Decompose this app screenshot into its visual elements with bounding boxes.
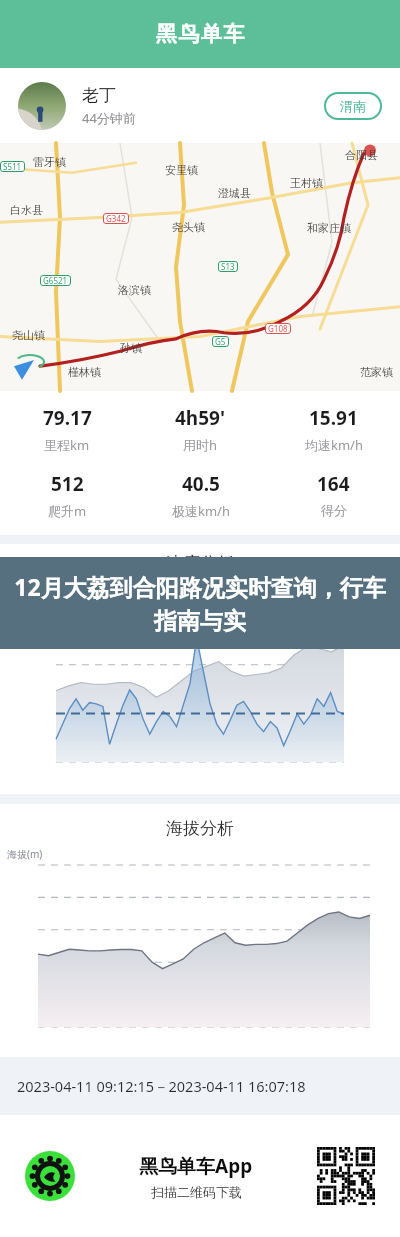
staticText: 速度分析 — [166, 553, 234, 574]
staticText: 79.17 — [43, 405, 92, 431]
staticText: 里程km — [44, 436, 90, 454]
staticText: 海拔分析 — [166, 818, 234, 839]
staticText: 极速km/h — [172, 502, 230, 520]
button[interactable]: 79.17 — [0, 405, 134, 454]
staticText: 槿林镇 — [68, 365, 101, 379]
staticText: 速度(km/h) — [7, 576, 58, 590]
staticText: 得分 — [321, 502, 347, 518]
staticText: 老丁 — [82, 85, 116, 106]
button[interactable]: 雷牙镇 — [0, 143, 400, 391]
staticText: 澄城县 — [218, 186, 251, 200]
staticText: 15.91 — [309, 405, 358, 431]
staticText: 44分钟前 — [82, 109, 136, 127]
staticText: 黑鸟单车App — [139, 1153, 253, 1179]
staticText: G108 — [268, 323, 288, 334]
staticText: 爬升m — [48, 502, 87, 520]
staticText: 2023-04-11 09:12:15－2023-04-11 16:07:18 — [17, 1076, 306, 1096]
staticText: 扫描二维码下载 — [151, 1184, 242, 1200]
button[interactable]: 4h59' — [134, 405, 267, 454]
button[interactable]: 老丁 — [18, 68, 382, 143]
staticText: 尧头镇 — [172, 220, 205, 234]
staticText: 和家庄镇 — [307, 221, 351, 235]
staticText: 164 — [317, 471, 350, 497]
button[interactable]: 512 — [0, 471, 134, 520]
staticText: S511 — [3, 161, 22, 172]
staticText: 均速km/h — [305, 436, 363, 454]
staticText: 孙镇 — [120, 341, 142, 355]
staticText: G6521 — [43, 275, 68, 286]
staticText: G5 — [215, 336, 226, 347]
button[interactable]: 黑鸟单车 Logo — [25, 1151, 75, 1201]
button[interactable]: 15.91 — [267, 405, 400, 454]
staticText: G342 — [106, 213, 126, 224]
staticText: 范家镇 — [360, 365, 393, 379]
staticText: 合阳县 — [345, 148, 378, 162]
staticText: 黑鸟单车 — [155, 21, 245, 47]
button[interactable]: 渭南 — [324, 92, 382, 120]
staticText: 4h59' — [175, 405, 226, 431]
staticText: 安里镇 — [165, 163, 198, 177]
staticText: 40.5 — [182, 471, 220, 497]
staticText: 雷牙镇 — [33, 155, 66, 169]
button[interactable]: 164 — [267, 471, 400, 518]
staticText: S13 — [221, 261, 235, 272]
staticText: 用时h — [183, 436, 218, 454]
staticText: 渭南 — [340, 98, 366, 114]
button[interactable]: 黑鸟单车 — [0, 0, 400, 68]
button[interactable]: 下载二维码 — [317, 1147, 375, 1205]
staticText: 洛滨镇 — [118, 283, 151, 297]
staticText: 王村镇 — [290, 176, 323, 190]
staticText: 海拔(m) — [348, 576, 384, 590]
staticText: 白水县 — [10, 203, 43, 217]
staticText: 尧山镇 — [12, 328, 45, 342]
staticText: 512 — [51, 471, 84, 497]
staticText: 海拔(m) — [7, 847, 43, 861]
staticText: 12月大荔到合阳路况实时查询，行车指南与实 — [12, 571, 388, 636]
button[interactable]: 40.5 — [134, 471, 267, 520]
